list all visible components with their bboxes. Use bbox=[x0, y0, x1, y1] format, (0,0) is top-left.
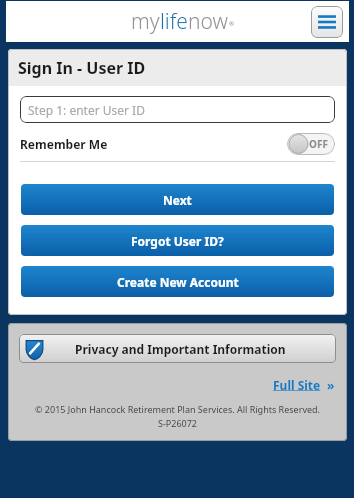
staticText: ® bbox=[229, 20, 234, 28]
staticText: Next bbox=[163, 192, 192, 208]
staticText: » bbox=[327, 377, 335, 393]
staticText: OFF bbox=[309, 137, 328, 151]
staticText: Sign In - User ID bbox=[18, 57, 146, 79]
staticText: Forgot User ID? bbox=[131, 233, 224, 249]
staticText: Create New Account bbox=[117, 274, 239, 290]
button[interactable]: Forgot User ID? bbox=[21, 225, 334, 256]
button[interactable]: Step 1: enter User ID bbox=[20, 96, 335, 123]
staticText: Full Site bbox=[273, 377, 321, 393]
button[interactable]: Create New Account bbox=[21, 266, 334, 297]
staticText: S-P26072 bbox=[8, 417, 347, 429]
button[interactable]: Remember Me toggle, off bbox=[287, 133, 335, 155]
button[interactable]: Next bbox=[21, 184, 334, 215]
button[interactable]: Full Site bbox=[273, 377, 335, 393]
staticText: Remember Me bbox=[20, 136, 108, 152]
staticText: Privacy and Important Information bbox=[75, 341, 286, 357]
staticText: life bbox=[160, 7, 188, 36]
button[interactable]: Menu bbox=[311, 6, 343, 38]
staticText: © 2015 John Hancock Retirement Plan Serv… bbox=[8, 403, 347, 415]
staticText: my bbox=[131, 7, 160, 36]
button[interactable]: Privacy and Important Information bbox=[19, 334, 336, 363]
staticText: now bbox=[188, 7, 228, 36]
staticText: Step 1: enter User ID bbox=[28, 102, 145, 118]
